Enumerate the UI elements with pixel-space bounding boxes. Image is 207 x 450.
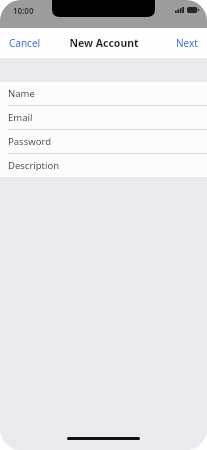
button[interactable]: Email — [0, 106, 207, 129]
staticText: Password — [8, 135, 51, 148]
staticText: Cancel — [9, 36, 41, 50]
staticText: Name — [8, 87, 35, 100]
button[interactable]: Description — [0, 154, 207, 177]
staticText: Email — [8, 111, 33, 124]
button[interactable]: Cancel — [0, 28, 50, 58]
staticText: New Account — [69, 36, 139, 50]
button[interactable]: Name — [0, 82, 207, 105]
staticText: Description — [8, 159, 60, 172]
staticText: 10:00 — [13, 5, 34, 16]
other: Home indicator — [67, 437, 140, 440]
button[interactable]: Next — [167, 28, 207, 58]
button[interactable]: Password — [0, 130, 207, 153]
staticText: Next — [176, 36, 198, 50]
